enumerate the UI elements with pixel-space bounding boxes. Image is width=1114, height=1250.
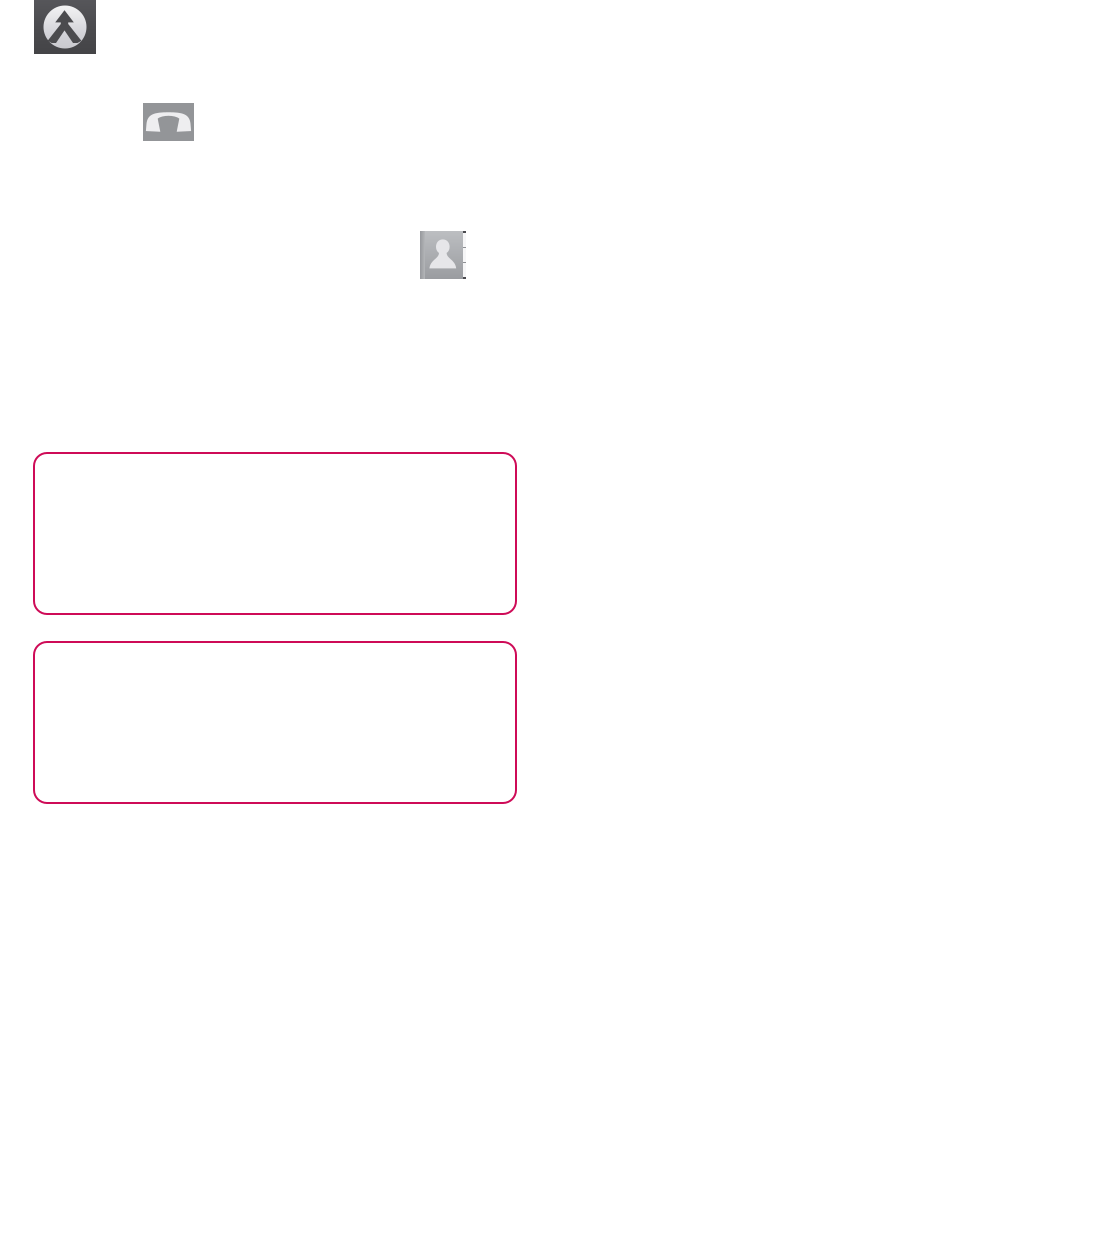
button[interactable]: Card 2 bbox=[34, 642, 516, 803]
button[interactable]: Contacts bbox=[420, 231, 466, 279]
button[interactable]: Card 1 bbox=[34, 453, 516, 614]
button[interactable]: Call bbox=[143, 103, 194, 141]
button[interactable]: Merge bbox=[34, 0, 96, 54]
